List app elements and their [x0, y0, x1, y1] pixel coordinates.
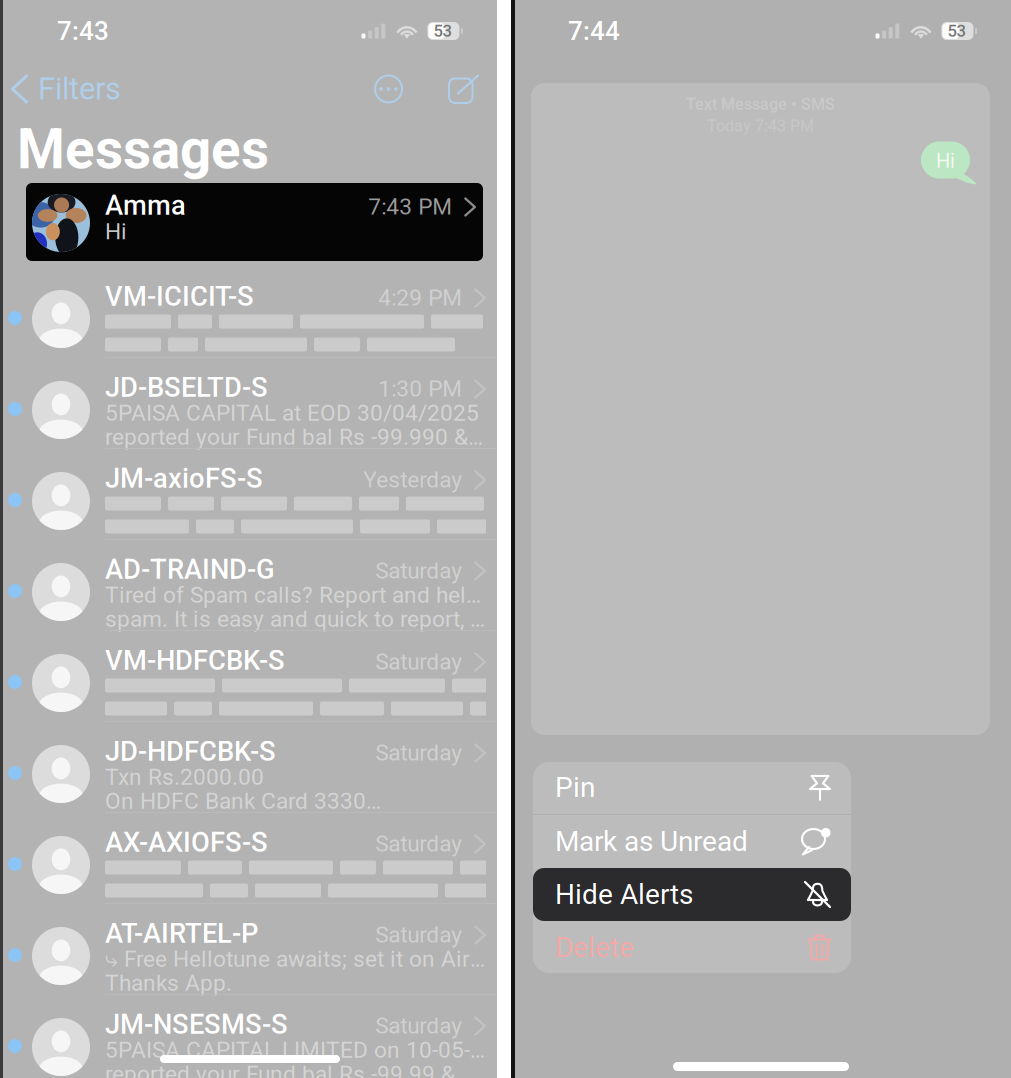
- staticText: Saturday: [375, 648, 462, 675]
- staticText: Saturday: [375, 830, 462, 857]
- button[interactable]: Mark as Unread: [533, 815, 851, 868]
- staticText: AT-AIRTEL-P: [105, 917, 258, 949]
- button[interactable]: AX-AXIOFS-S: [0, 813, 497, 904]
- staticText: 1:30 PM: [378, 375, 462, 402]
- button[interactable]: JD-HDFCBK-S: [0, 722, 497, 813]
- staticText: VM-ICICIT-S: [105, 280, 254, 312]
- staticText: AD-TRAIND-G: [105, 553, 275, 585]
- staticText: 5PAISA CAPITAL at EOD 30/04/2025: [105, 400, 479, 426]
- button[interactable]: Hide Alerts: [533, 868, 851, 921]
- staticText: Thanks App.: [105, 970, 232, 996]
- staticText: Saturday: [375, 557, 462, 584]
- staticText: 4:29 PM: [378, 284, 462, 311]
- staticText: Pin: [555, 771, 595, 804]
- staticText: Saturday: [375, 739, 462, 766]
- button[interactable]: VM-HDFCBK-S: [0, 631, 497, 722]
- staticText: ⤷ Free Hellotune awaits; set it on Airte…: [105, 946, 486, 972]
- button[interactable]: More options: [374, 74, 403, 103]
- staticText: reported your Fund bal Rs -99.990 & Secu…: [105, 424, 486, 450]
- staticText: Yesterday: [363, 466, 462, 493]
- staticText: AX-AXIOFS-S: [105, 826, 268, 858]
- button[interactable]: JD-BSELTD-S: [0, 358, 497, 449]
- staticText: Mark as Unread: [555, 825, 748, 858]
- staticText: Saturday: [375, 1012, 462, 1039]
- staticText: On HDFC Bank Card 3330…: [105, 788, 381, 814]
- button[interactable]: JM-NSESMS-S: [0, 995, 497, 1078]
- staticText: 53: [433, 21, 451, 41]
- staticText: 5PAISA CAPITAL LIMITED on 10-05-25: [105, 1037, 486, 1063]
- staticText: JM-NSESMS-S: [105, 1008, 288, 1040]
- staticText: VM-HDFCBK-S: [105, 644, 285, 676]
- staticText: JD-BSELTD-S: [105, 371, 268, 403]
- staticText: Saturday: [375, 921, 462, 948]
- button[interactable]: New message: [403, 74, 497, 103]
- staticText: spam. It is easy and quick to report, bl…: [105, 606, 486, 632]
- staticText: Amma: [105, 189, 186, 221]
- staticText: 53: [947, 21, 965, 41]
- staticText: JM-axioFS-S: [105, 462, 263, 494]
- staticText: Filters: [38, 71, 121, 107]
- staticText: Hide Alerts: [555, 878, 693, 911]
- button[interactable]: Filters: [0, 65, 121, 113]
- staticText: Messages: [17, 117, 269, 182]
- staticText: Text Message • SMS: [686, 95, 835, 114]
- button[interactable]: VM-ICICIT-S: [0, 267, 497, 358]
- staticText: Hi: [936, 149, 955, 173]
- staticText: Today 7:43 PM: [707, 117, 814, 136]
- button[interactable]: Delete: [533, 921, 851, 974]
- staticText: Txn Rs.2000.00: [105, 764, 264, 790]
- staticText: Delete: [555, 931, 634, 964]
- button[interactable]: Amma: [26, 183, 483, 261]
- button[interactable]: AT-AIRTEL-P: [0, 904, 497, 995]
- staticText: Tired of Spam calls? Report and help con…: [105, 582, 486, 608]
- staticText: 7:44: [568, 16, 620, 46]
- staticText: Hi: [105, 218, 127, 245]
- staticText: 7:43: [57, 16, 109, 46]
- staticText: JD-HDFCBK-S: [105, 735, 276, 767]
- button[interactable]: Pin: [533, 761, 851, 814]
- staticText: 7:43 PM: [368, 193, 452, 220]
- button[interactable]: JM-axioFS-S: [0, 449, 497, 540]
- staticText: reported your Fund bal Rs -99.99 & Secur…: [105, 1061, 486, 1078]
- button[interactable]: AD-TRAIND-G: [0, 540, 497, 631]
